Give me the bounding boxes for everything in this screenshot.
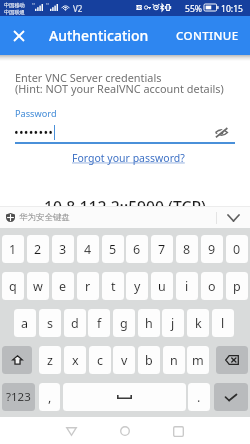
button[interactable]: s	[39, 309, 61, 337]
staticText: 5	[109, 241, 117, 258]
button[interactable]: 6	[126, 235, 148, 263]
staticText: 10.8.112.2::5900 (TCP)	[44, 196, 206, 217]
staticText: b	[145, 352, 153, 369]
button[interactable]: i	[176, 272, 198, 300]
button[interactable]: k	[187, 309, 209, 337]
staticText: 10:15	[221, 3, 243, 15]
button[interactable]: j	[162, 309, 184, 337]
staticText: v	[121, 352, 128, 369]
staticText: z	[47, 352, 53, 369]
staticText: 55%	[185, 3, 202, 15]
staticText: k	[195, 315, 202, 332]
button[interactable]: q	[2, 272, 24, 300]
staticText: 华为安全键盘	[19, 212, 70, 223]
staticText: 1	[9, 241, 17, 258]
button[interactable]: w	[27, 272, 49, 300]
button[interactable]: Space	[63, 383, 186, 411]
staticText: Password	[15, 107, 57, 120]
button[interactable]: x	[64, 346, 86, 374]
staticText: h	[145, 315, 153, 332]
button[interactable]: o	[201, 272, 223, 300]
button[interactable]: 8	[176, 235, 198, 263]
staticText: s	[47, 315, 53, 332]
button[interactable]: Forgot your password?	[71, 150, 186, 166]
button[interactable]: CONTINUE	[165, 16, 250, 55]
button[interactable]: n	[163, 346, 185, 374]
staticText: n	[170, 352, 178, 369]
staticText: i	[185, 278, 189, 295]
staticText: g	[120, 315, 128, 332]
button[interactable]: 4	[77, 235, 99, 263]
button[interactable]: 9	[201, 235, 223, 263]
button[interactable]: Home	[108, 419, 141, 443]
staticText: 6	[133, 241, 141, 258]
button[interactable]: Shift	[2, 346, 32, 374]
staticText: p	[233, 278, 241, 295]
staticText: t	[111, 278, 116, 295]
staticText: y	[134, 278, 141, 295]
button[interactable]: l	[212, 309, 234, 337]
button[interactable]: Recents	[162, 419, 195, 443]
button[interactable]: p	[226, 272, 248, 300]
button[interactable]: r	[77, 272, 99, 300]
button[interactable]: t	[102, 272, 124, 300]
button[interactable]: 2	[27, 235, 49, 263]
button[interactable]: d	[64, 309, 86, 337]
staticText: e	[59, 278, 67, 295]
staticText: u	[158, 278, 166, 295]
staticText: 中国联通	[4, 9, 25, 16]
staticText: 3	[59, 241, 67, 258]
staticText: 2	[34, 241, 42, 258]
staticText: ••••••••	[14, 124, 54, 141]
staticText: Enter VNC Server credentials (Hint: NOT …	[15, 70, 224, 96]
staticText: Forgot your password?	[72, 151, 185, 165]
button[interactable]: y	[126, 272, 148, 300]
staticText: w	[33, 278, 43, 295]
staticText: ,	[48, 389, 52, 406]
button[interactable]: v	[113, 346, 135, 374]
staticText: x	[72, 352, 79, 369]
button[interactable]: ,	[39, 383, 60, 411]
staticText: 0	[233, 241, 241, 258]
button[interactable]: Backspace	[216, 346, 248, 374]
staticText: 9	[208, 241, 216, 258]
staticText: 4	[84, 241, 92, 258]
button[interactable]: b	[138, 346, 160, 374]
staticText: m	[192, 352, 204, 369]
button[interactable]: Back	[55, 419, 88, 443]
button[interactable]: .	[188, 383, 210, 411]
staticText: r	[85, 278, 91, 295]
button[interactable]: Enter	[214, 383, 248, 411]
button[interactable]: m	[187, 346, 209, 374]
staticText: d	[71, 315, 79, 332]
button[interactable]: f	[88, 309, 110, 337]
staticText: a	[21, 315, 29, 332]
staticText: 7	[158, 241, 166, 258]
button[interactable]: Show password	[211, 122, 231, 142]
button[interactable]: 3	[52, 235, 74, 263]
staticText: j	[171, 315, 175, 332]
button[interactable]: a	[14, 309, 36, 337]
button[interactable]: e	[52, 272, 74, 300]
button[interactable]: z	[39, 346, 61, 374]
staticText: c	[97, 352, 104, 369]
staticText: Authentication	[49, 26, 149, 45]
button[interactable]: c	[89, 346, 111, 374]
button[interactable]: h	[138, 309, 160, 337]
button[interactable]: Close	[0, 16, 38, 55]
button[interactable]: 7	[151, 235, 173, 263]
button[interactable]: u	[151, 272, 173, 300]
staticText: f	[97, 315, 102, 332]
staticText: CONTINUE	[176, 28, 239, 44]
button[interactable]: 0	[226, 235, 248, 263]
button[interactable]: Hide keyboard	[217, 207, 250, 228]
button[interactable]: 5	[102, 235, 124, 263]
button[interactable]: g	[113, 309, 135, 337]
staticText: V2	[73, 3, 83, 14]
button[interactable]: 1	[2, 235, 24, 263]
staticText: 中国移动	[4, 2, 25, 9]
staticText: HD	[136, 5, 142, 10]
staticText: ?123	[6, 389, 31, 405]
staticText: o	[208, 278, 216, 295]
button[interactable]: ?123	[2, 383, 35, 411]
